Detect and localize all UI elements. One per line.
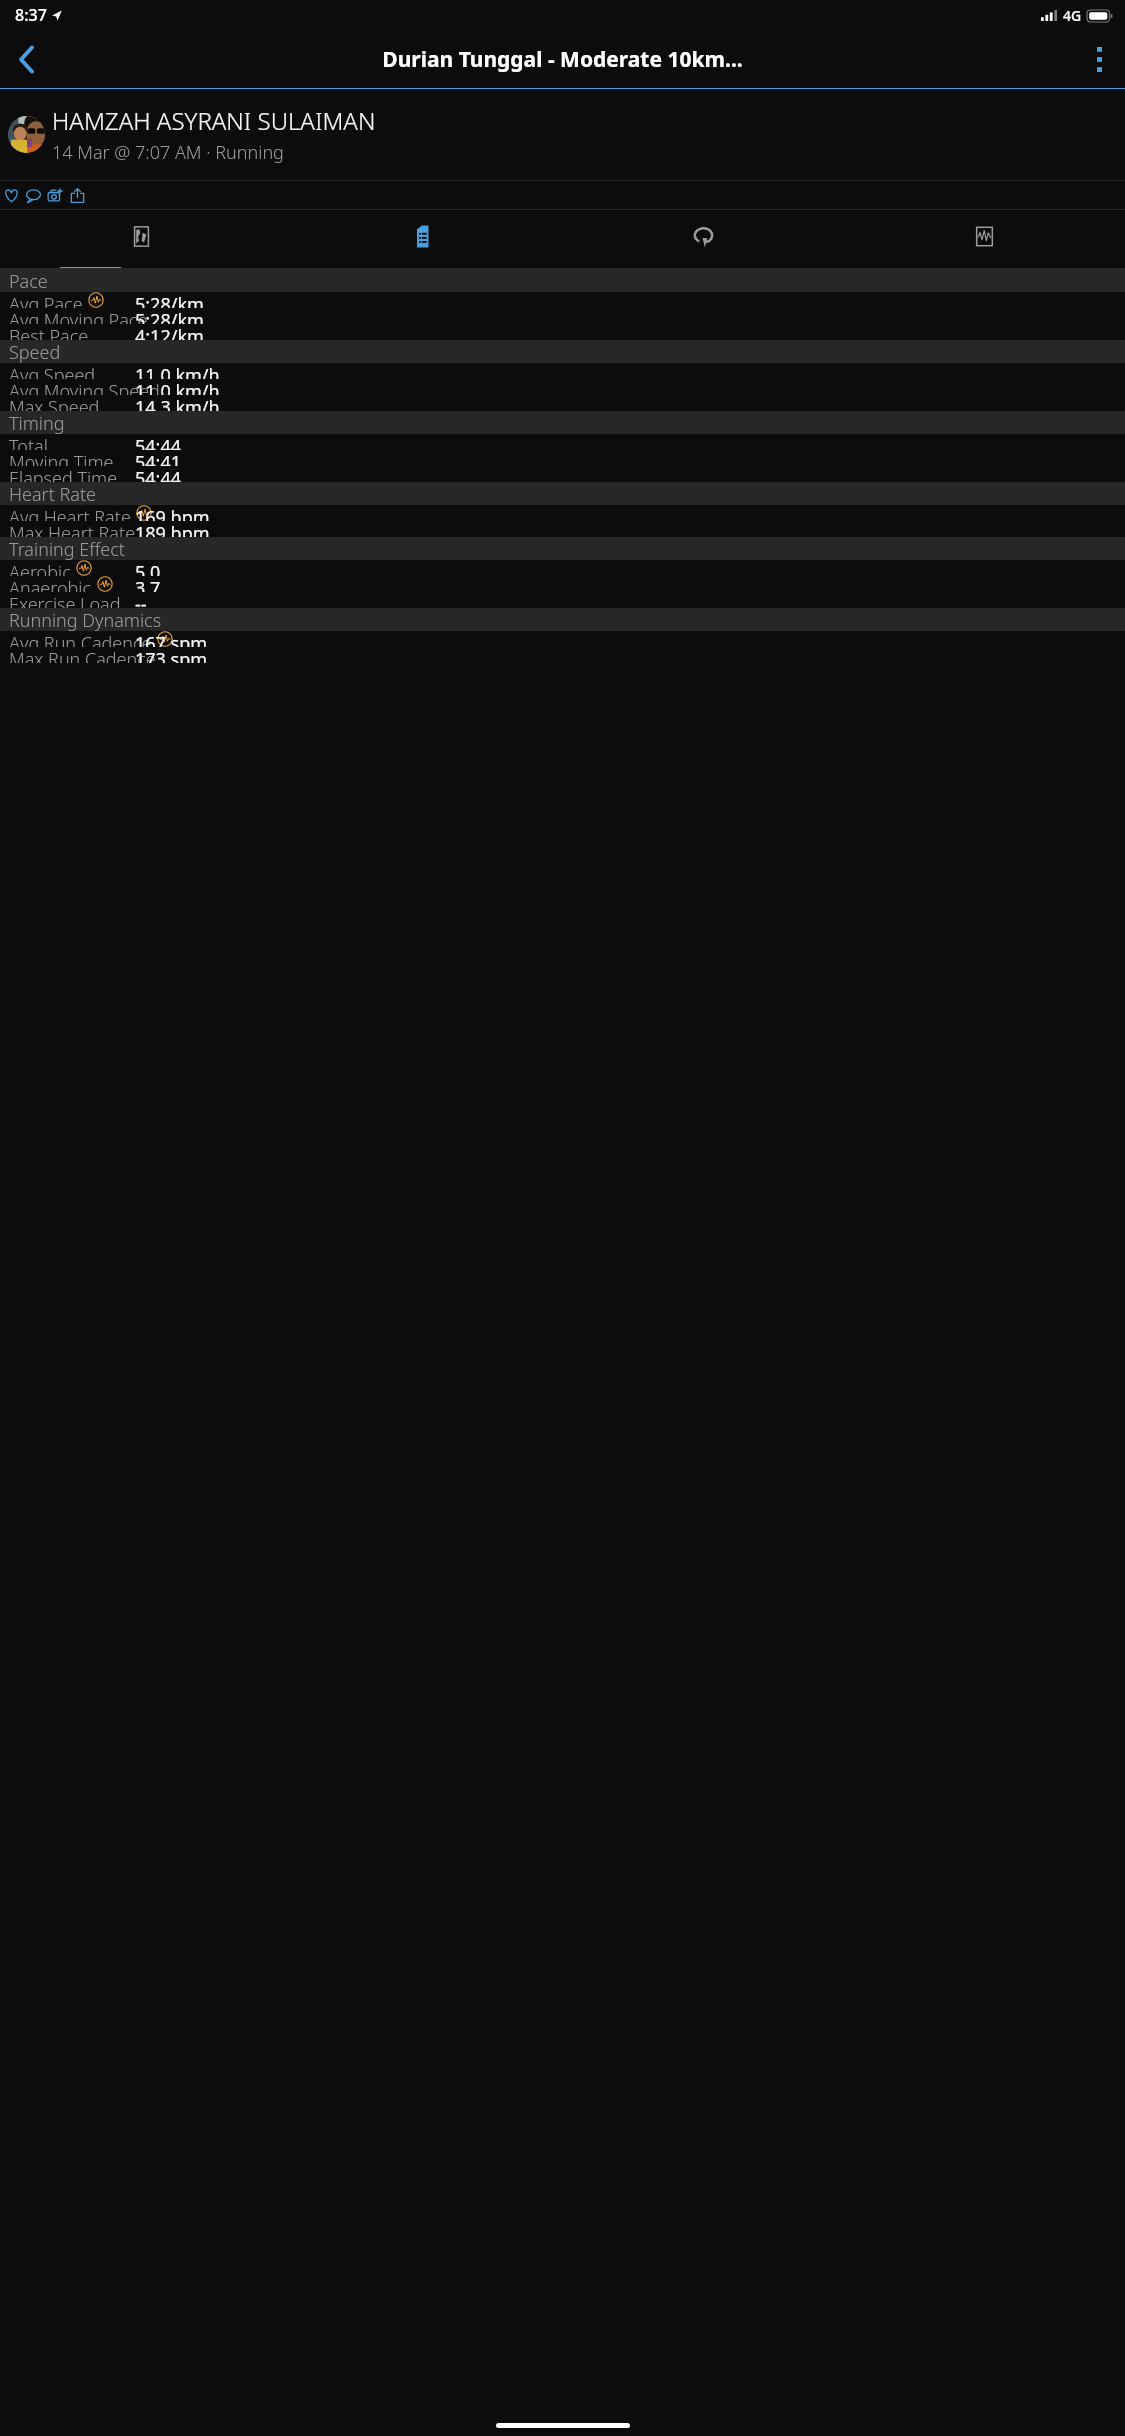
staticText: -- — [135, 592, 147, 608]
staticText: 11.0 km/h — [135, 363, 220, 379]
staticText: 4:12/km — [135, 324, 204, 340]
button[interactable]: Laps — [563, 210, 844, 269]
staticText: Avg Heart Rate — [9, 505, 131, 521]
staticText: Avg Pace — [9, 292, 83, 308]
button[interactable]: HAMZAH ASYRANI SULAIMAN — [0, 89, 1125, 180]
button[interactable]: Back — [0, 30, 52, 88]
staticText: 54:44 — [135, 466, 182, 482]
button[interactable]: Like — [0, 181, 22, 209]
staticText: 54:41 — [135, 450, 182, 466]
button[interactable]: Anaerobic — [0, 576, 1125, 592]
button[interactable]: Avg Run Cadence — [0, 631, 1125, 647]
staticText: 167 spm — [135, 631, 208, 647]
staticText: 189 bpm — [135, 521, 210, 537]
button[interactable]: Max Run Cadence — [0, 647, 1125, 663]
staticText: Elapsed Time — [9, 466, 118, 482]
staticText: Avg Moving Speed — [9, 379, 160, 395]
staticText: Moving Time — [9, 450, 114, 466]
staticText: Running Dynamics — [9, 608, 162, 631]
staticText: 14 Mar @ 7:07 AM · Running — [52, 140, 284, 165]
button[interactable]: Avg Moving Speed — [0, 379, 1125, 395]
button[interactable]: Moving Time — [0, 450, 1125, 466]
staticText: Timing — [9, 411, 65, 434]
staticText: Avg Moving Pace — [9, 308, 148, 324]
staticText: Max Heart Rate — [9, 521, 136, 537]
staticText: 5:28/km — [135, 292, 204, 308]
button[interactable]: Share — [66, 181, 88, 209]
button[interactable]: Avg Heart Rate — [0, 505, 1125, 521]
staticText: Total — [9, 434, 48, 450]
button[interactable]: Exercise Load — [0, 592, 1125, 608]
button[interactable]: Max Heart Rate — [0, 521, 1125, 537]
staticText: Avg Speed — [9, 363, 96, 379]
staticText: 173 spm — [135, 647, 208, 663]
staticText: 169 bpm — [135, 505, 210, 521]
staticText: 5.0 — [135, 560, 161, 576]
staticText: Training Effect — [9, 537, 125, 560]
staticText: 5:28/km — [135, 308, 204, 324]
staticText: Exercise Load — [9, 592, 121, 608]
button[interactable]: Max Speed — [0, 395, 1125, 411]
staticText: Avg Run Cadence — [9, 631, 152, 647]
staticText: Aerobic — [9, 560, 71, 576]
staticText: Heart Rate — [9, 482, 96, 505]
staticText: Max Speed — [9, 395, 100, 411]
button[interactable]: Aerobic — [0, 560, 1125, 576]
staticText: 14.3 km/h — [135, 395, 220, 411]
staticText: 11.0 km/h — [135, 379, 220, 395]
staticText: Pace — [9, 269, 48, 292]
button[interactable]: Total — [0, 434, 1125, 450]
button[interactable]: Elapsed Time — [0, 466, 1125, 482]
staticText: Anaerobic — [9, 576, 92, 592]
staticText: Speed — [9, 340, 61, 363]
button[interactable]: Avg Speed — [0, 363, 1125, 379]
button[interactable]: Add photo — [44, 181, 66, 209]
button[interactable]: Charts — [844, 210, 1125, 269]
staticText: 4G — [1063, 6, 1082, 25]
staticText: 54:44 — [135, 434, 182, 450]
staticText: 3.7 — [135, 576, 161, 592]
staticText: Durian Tunggal - Moderate 10km... — [382, 45, 743, 74]
button[interactable]: Avg Moving Pace — [0, 308, 1125, 324]
staticText: Best Pace — [9, 324, 89, 340]
button[interactable]: Details — [282, 210, 563, 269]
button[interactable]: Map — [0, 210, 282, 269]
staticText: 8:37 — [15, 4, 47, 26]
button[interactable]: Avg Pace — [0, 292, 1125, 308]
staticText: Max Run Cadence — [9, 647, 156, 663]
staticText: HAMZAH ASYRANI SULAIMAN — [52, 104, 376, 137]
button[interactable]: More options — [1073, 30, 1125, 88]
button[interactable]: Comment — [22, 181, 44, 209]
button[interactable]: Best Pace — [0, 324, 1125, 340]
